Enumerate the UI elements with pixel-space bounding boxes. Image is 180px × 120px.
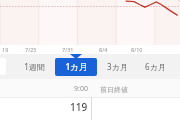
- staticText: 7/31: [62, 46, 74, 53]
- staticText: 7/25: [25, 46, 37, 53]
- staticText: 19: [2, 46, 9, 53]
- staticText: 8/4: [99, 46, 108, 53]
- staticText: 6カ月: [145, 61, 166, 72]
- staticText: 1週間: [24, 61, 45, 72]
- button[interactable]: 3カ月: [100, 58, 134, 75]
- staticText: 前日終値: [100, 85, 128, 94]
- staticText: 8/10: [131, 46, 143, 53]
- staticText: 9:00: [74, 84, 88, 94]
- staticText: 119: [70, 100, 88, 114]
- button[interactable]: 1週間: [16, 58, 52, 75]
- button[interactable]: 119: [52, 100, 88, 114]
- staticText: 1カ月: [65, 61, 88, 73]
- button[interactable]: 6カ月: [138, 58, 172, 75]
- button[interactable]: 9:00: [52, 83, 88, 95]
- button[interactable]: 前日終値: [100, 83, 144, 95]
- staticText: 3カ月: [107, 61, 128, 72]
- button[interactable]: 1カ月: [55, 58, 97, 76]
